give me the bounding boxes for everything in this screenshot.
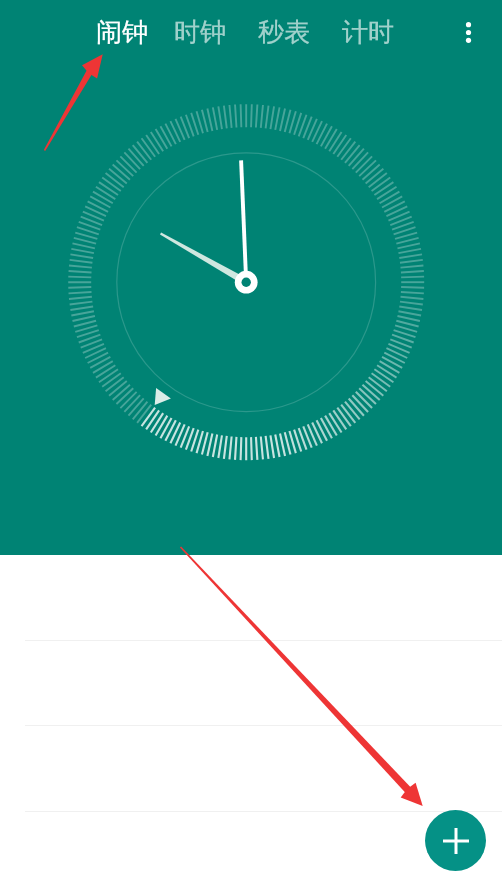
staticText: 闹钟 bbox=[96, 16, 148, 49]
button[interactable]: 时钟 bbox=[166, 9, 234, 55]
button[interactable]: Add alarm bbox=[425, 810, 486, 871]
staticText: 时钟 bbox=[174, 16, 226, 49]
button[interactable] bbox=[0, 641, 502, 726]
button[interactable]: 秒表 bbox=[250, 9, 318, 55]
button[interactable]: 闹钟 bbox=[88, 9, 156, 55]
staticText: 计时 bbox=[342, 16, 394, 49]
button[interactable]: 计时 bbox=[334, 9, 402, 55]
button[interactable] bbox=[0, 726, 502, 812]
button[interactable] bbox=[0, 812, 502, 885]
button[interactable] bbox=[0, 556, 502, 641]
staticText: 秒表 bbox=[258, 16, 310, 49]
button[interactable]: More options bbox=[447, 10, 489, 52]
